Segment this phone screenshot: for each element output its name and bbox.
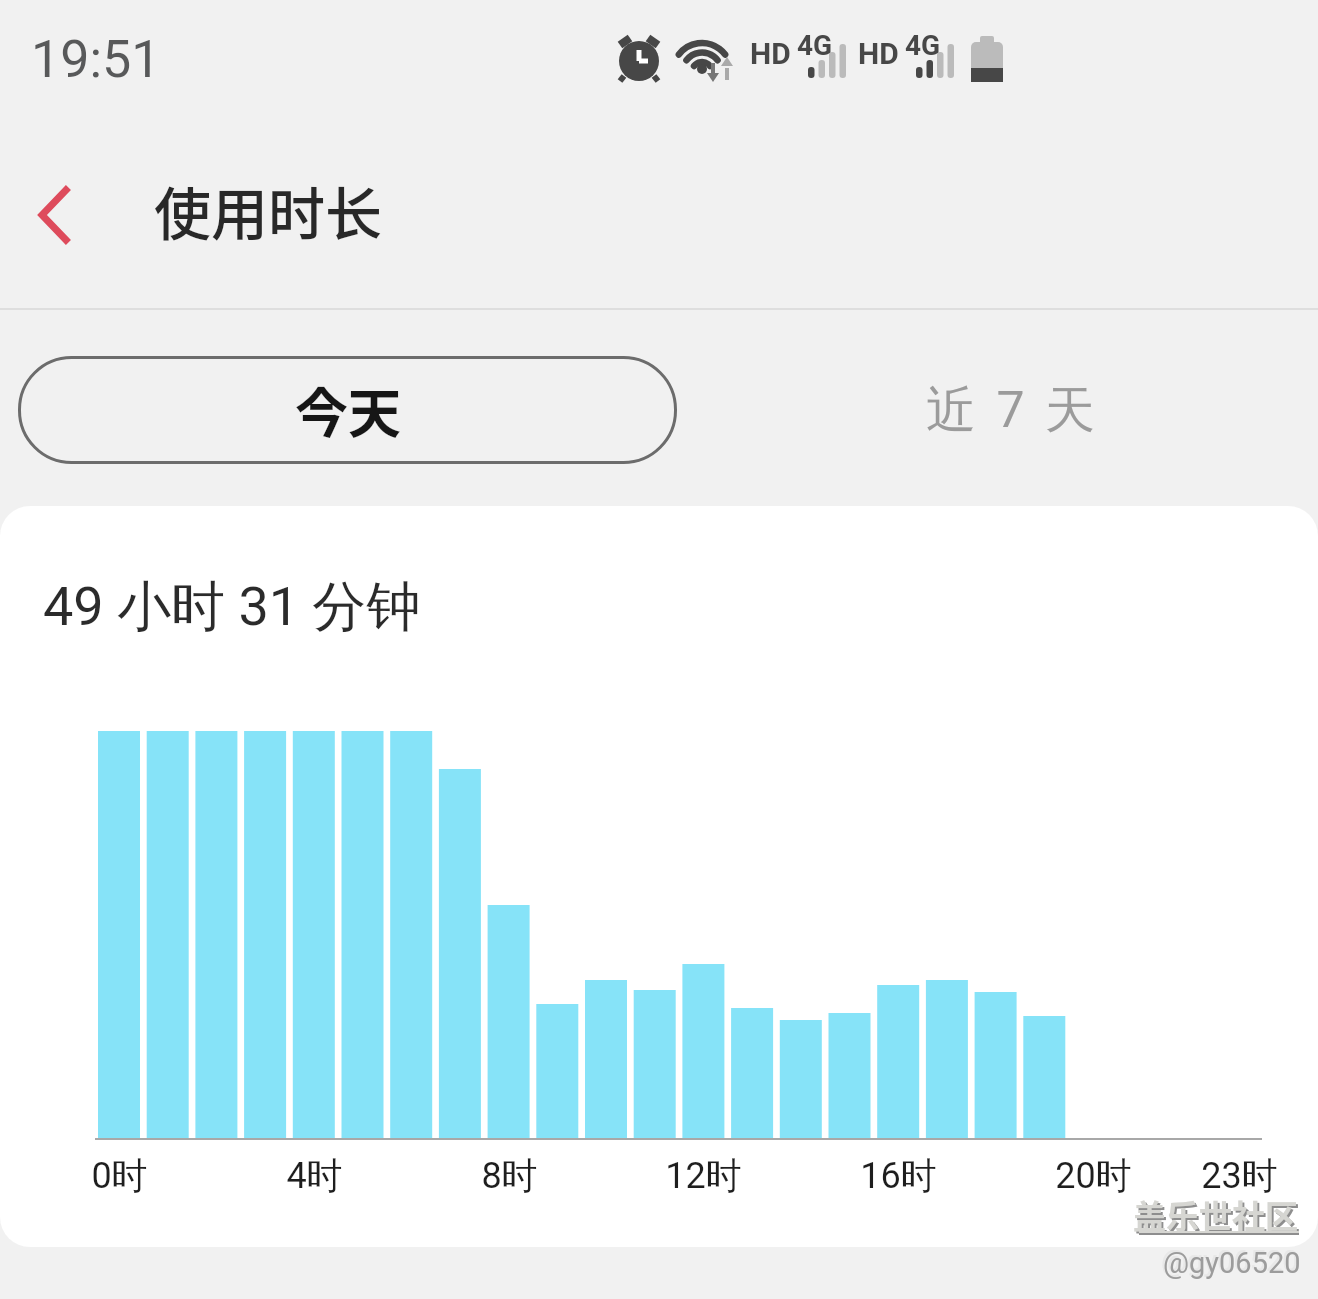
staticText: 20时 (1055, 1153, 1132, 1198)
staticText: 4G (797, 29, 833, 62)
staticText: 0时 (91, 1153, 148, 1198)
staticText: 使用时长 (154, 169, 382, 252)
staticText: HD (858, 36, 899, 71)
staticText: 49 小时 31 分钟 (43, 573, 421, 641)
staticText: 23时 (1201, 1153, 1278, 1198)
staticText: 盖乐世社区 (1133, 1191, 1298, 1239)
button[interactable]: 近 7 天 (677, 356, 1318, 464)
staticText: 近 7 天 (926, 379, 1099, 442)
staticText: @gy06520 (1163, 1246, 1301, 1280)
staticText: HD (750, 36, 791, 71)
button[interactable] (18, 180, 90, 250)
staticText: 4G (905, 29, 941, 62)
staticText: 今天 (295, 372, 401, 449)
staticText: 16时 (860, 1153, 937, 1198)
staticText: 8时 (481, 1153, 538, 1198)
staticText: 4时 (286, 1153, 343, 1198)
staticText: 12时 (665, 1153, 742, 1198)
button[interactable]: 今天 (18, 356, 677, 464)
staticText: @gy06520 (1161, 1244, 1299, 1278)
staticText: 19:51 (31, 29, 161, 90)
staticText: 盖乐世社区 (1135, 1193, 1300, 1241)
